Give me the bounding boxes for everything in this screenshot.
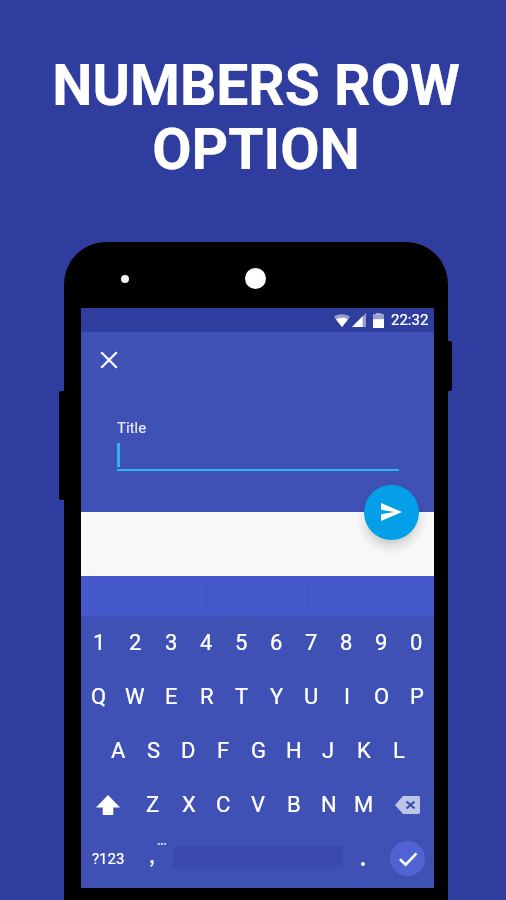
- staticText: E: [165, 684, 178, 710]
- staticText: F: [217, 738, 230, 764]
- button[interactable]: P: [399, 670, 434, 724]
- button[interactable]: Backspace: [381, 778, 434, 832]
- staticText: P: [410, 684, 424, 710]
- staticText: H: [286, 738, 302, 764]
- button[interactable]: 9: [364, 616, 399, 670]
- button[interactable]: 7: [294, 616, 329, 670]
- button[interactable]: O: [364, 670, 399, 724]
- staticText: N: [321, 792, 337, 818]
- staticText: Y: [270, 684, 284, 710]
- button[interactable]: 4: [189, 616, 224, 670]
- staticText: L: [393, 738, 405, 764]
- staticText: 9: [375, 630, 388, 656]
- button[interactable]: Z: [135, 778, 171, 832]
- staticText: 7: [305, 630, 318, 656]
- button[interactable]: H: [276, 724, 311, 778]
- button[interactable]: E: [153, 670, 189, 724]
- button[interactable]: J: [311, 724, 346, 778]
- button[interactable]: Shift: [81, 778, 135, 832]
- button[interactable]: A: [100, 724, 136, 778]
- button[interactable]: ?123: [81, 832, 135, 886]
- staticText: O: [374, 684, 390, 710]
- staticText: M: [354, 792, 374, 818]
- button[interactable]: L: [381, 724, 416, 778]
- staticText: A: [111, 738, 126, 764]
- staticText: C: [216, 792, 231, 818]
- staticText: S: [147, 738, 161, 764]
- button[interactable]: G: [241, 724, 276, 778]
- staticText: T: [235, 684, 249, 710]
- button[interactable]: D: [171, 724, 206, 778]
- button[interactable]: N: [311, 778, 346, 832]
- staticText: X: [182, 792, 196, 818]
- staticText: Z: [146, 792, 160, 818]
- button[interactable]: M: [346, 778, 381, 832]
- staticText: 4: [200, 630, 213, 656]
- staticText: G: [251, 738, 266, 764]
- button[interactable]: Q: [81, 670, 117, 724]
- staticText: B: [287, 792, 301, 818]
- staticText: Title: [117, 419, 147, 437]
- button[interactable]: I: [329, 670, 364, 724]
- button[interactable]: K: [346, 724, 381, 778]
- staticText: ?123: [92, 850, 125, 868]
- staticText: W: [125, 684, 145, 710]
- staticText: 22:32: [391, 311, 429, 329]
- button[interactable]: Close: [93, 344, 124, 375]
- staticText: 1: [93, 630, 106, 656]
- button[interactable]: 3: [153, 616, 189, 670]
- button[interactable]: Send: [364, 485, 419, 540]
- staticText: J: [322, 738, 335, 764]
- staticText: U: [304, 684, 319, 710]
- button[interactable]: F: [206, 724, 241, 778]
- button[interactable]: V: [241, 778, 276, 832]
- button[interactable]: U: [294, 670, 329, 724]
- button[interactable]: 1: [81, 616, 117, 670]
- button[interactable]: T: [224, 670, 259, 724]
- button[interactable]: 0: [399, 616, 434, 670]
- button[interactable]: R: [189, 670, 224, 724]
- staticText: 3: [165, 630, 178, 656]
- staticText: 5: [235, 630, 248, 656]
- staticText: K: [357, 738, 371, 764]
- staticText: 0: [410, 630, 423, 656]
- staticText: 2: [129, 630, 142, 656]
- button[interactable]: B: [276, 778, 311, 832]
- button[interactable]: 5: [224, 616, 259, 670]
- button[interactable]: 8: [329, 616, 364, 670]
- staticText: D: [181, 738, 196, 764]
- button[interactable]: S: [136, 724, 171, 778]
- staticText: 8: [340, 630, 353, 656]
- staticText: V: [251, 792, 266, 818]
- button[interactable]: C: [206, 778, 241, 832]
- button[interactable]: X: [171, 778, 206, 832]
- staticText: 6: [270, 630, 283, 656]
- staticText: Q: [91, 684, 107, 710]
- button[interactable]: Period: [343, 832, 381, 886]
- staticText: NUMBERS ROW OPTION: [3, 52, 506, 183]
- button[interactable]: Enter: [381, 832, 434, 886]
- button[interactable]: Y: [259, 670, 294, 724]
- staticText: I: [344, 684, 350, 710]
- button[interactable]: 6: [259, 616, 294, 670]
- staticText: R: [200, 684, 214, 710]
- button[interactable]: 2: [117, 616, 153, 670]
- button[interactable]: Comma: [135, 832, 173, 886]
- button[interactable]: W: [117, 670, 153, 724]
